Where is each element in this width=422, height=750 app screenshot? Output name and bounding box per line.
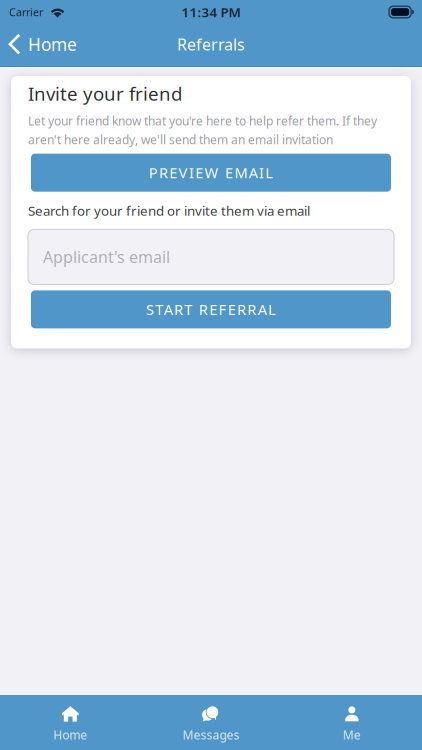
button[interactable]: PREVIEW EMAIL [31, 154, 391, 192]
button[interactable]: Applicant's email [28, 229, 394, 284]
staticText: Home [28, 33, 77, 56]
staticText: START REFERRAL [146, 300, 276, 319]
staticText: Referrals [177, 34, 245, 55]
staticText: Search for your friend or invite them vi… [28, 202, 310, 219]
staticText: Messages [182, 727, 239, 743]
button[interactable]: Back to Home [0, 24, 89, 66]
button[interactable]: Messages [141, 695, 281, 750]
staticText: Let your friend know that you're here to… [28, 113, 377, 148]
button[interactable]: Home [0, 695, 141, 750]
staticText: Invite your friend [28, 81, 182, 106]
staticText: Applicant's email [43, 246, 170, 267]
staticText: PREVIEW EMAIL [149, 163, 273, 182]
staticText: Me [343, 727, 361, 743]
staticText: 11:34 PM [181, 3, 240, 21]
button[interactable]: START REFERRAL [31, 290, 391, 328]
staticText: Home [53, 727, 87, 743]
staticText: Carrier [9, 5, 43, 19]
button[interactable]: Me [281, 695, 422, 750]
